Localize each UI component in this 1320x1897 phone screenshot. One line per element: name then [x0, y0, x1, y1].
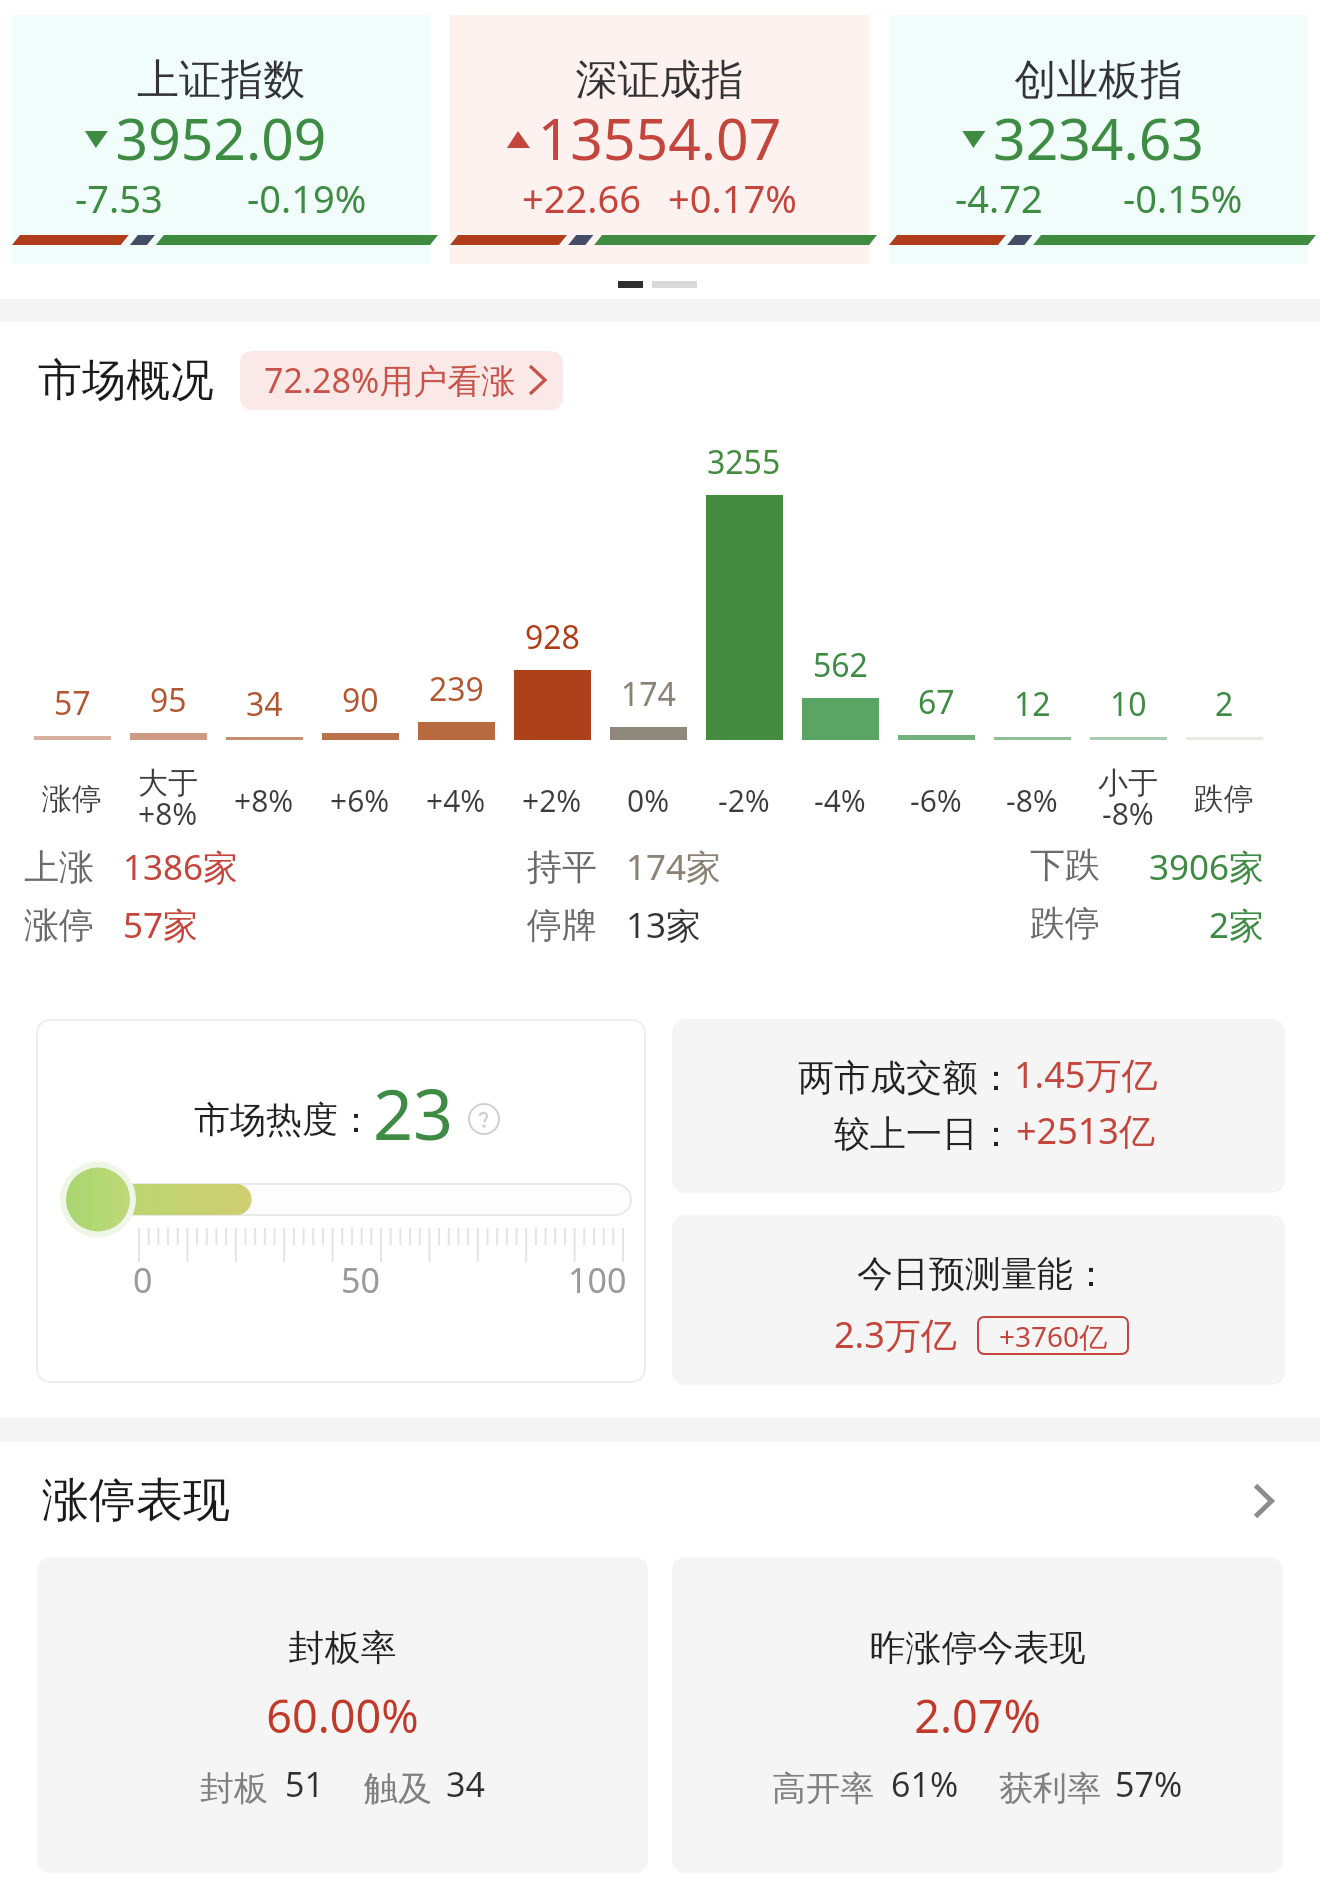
staticText: +8%	[234, 780, 294, 821]
staticText: -8%	[1102, 793, 1154, 834]
button[interactable]: 上证指数	[12, 15, 430, 264]
staticText: 跌停	[1030, 901, 1100, 945]
staticText: 下跌	[1030, 843, 1100, 887]
staticText: 市场概况	[38, 353, 214, 408]
staticText: 61%	[891, 1761, 959, 1807]
staticText: 562	[813, 643, 868, 687]
button[interactable]: 涨停表现	[42, 1471, 1274, 1530]
staticText: 90	[342, 678, 379, 722]
staticText: 95	[150, 678, 187, 722]
staticText: +2513亿	[1016, 1106, 1155, 1155]
staticText: 封板率	[37, 1625, 648, 1670]
staticText: 0	[133, 1257, 153, 1303]
staticText: 今日预测量能：	[857, 1251, 1109, 1296]
staticText: 51	[285, 1761, 324, 1807]
button[interactable]: 昨涨停今表现	[672, 1557, 1283, 1873]
staticText: -7.53	[75, 172, 163, 224]
staticText: 10	[1110, 682, 1147, 726]
staticText: -4%	[814, 780, 866, 821]
staticText: 13554.07	[450, 99, 869, 177]
staticText: -0.15%	[1123, 172, 1243, 224]
staticText: -0.19%	[247, 172, 367, 224]
button[interactable]: 市场热度：	[36, 1019, 646, 1383]
staticText: 239	[429, 667, 484, 711]
staticText: 触及	[364, 1767, 432, 1810]
staticText: 0%	[627, 780, 670, 821]
staticText: +0.17%	[668, 172, 797, 224]
staticText: 2.07%	[672, 1685, 1283, 1746]
staticText: -8%	[1006, 780, 1058, 821]
staticText: 高开率	[772, 1767, 874, 1810]
staticText: 3906家	[0, 843, 1264, 891]
staticText: 34	[446, 1761, 485, 1807]
staticText: 12	[1014, 682, 1051, 726]
staticText: 两市成交额：	[798, 1055, 1014, 1100]
staticText: 涨停	[24, 903, 94, 947]
staticText: 100	[568, 1257, 627, 1303]
staticText: +8%	[138, 793, 198, 834]
staticText: 23	[373, 1065, 454, 1160]
staticText: 封板	[200, 1767, 268, 1810]
staticText: 57%	[1115, 1761, 1183, 1807]
staticText: 昨涨停今表现	[672, 1625, 1283, 1670]
button[interactable]: 72.28%用户看涨	[240, 351, 563, 410]
staticText: 上涨	[24, 845, 94, 889]
staticText: 57家	[123, 901, 199, 949]
staticText: 34	[246, 682, 283, 726]
staticText: +4%	[426, 780, 486, 821]
staticText: 174家	[626, 843, 722, 891]
button[interactable]: 封板率	[37, 1557, 648, 1873]
staticText: 50	[341, 1257, 380, 1303]
staticText: 较上一日：	[834, 1111, 1014, 1156]
staticText: 13家	[626, 901, 702, 949]
staticText: 涨停表现	[42, 1471, 230, 1530]
staticText: 涨停	[42, 780, 102, 818]
staticText: +6%	[330, 780, 390, 821]
staticText: 深证成指	[450, 54, 869, 107]
staticText: +3760亿	[999, 1317, 1108, 1355]
staticText: -6%	[910, 780, 962, 821]
staticText: 停牌	[527, 903, 597, 947]
staticText: 3234.63	[889, 99, 1308, 177]
staticText: 2.3万亿	[834, 1310, 957, 1359]
staticText: -4.72	[955, 172, 1043, 224]
button[interactable]: 深证成指	[450, 15, 869, 264]
staticText: +2%	[522, 780, 582, 821]
staticText: 72.28%用户看涨	[264, 357, 516, 403]
staticText: 上证指数	[12, 54, 430, 107]
button[interactable]: 创业板指	[889, 15, 1308, 264]
button[interactable]: 市场热度说明	[468, 1103, 500, 1135]
staticText: 获利率	[999, 1767, 1101, 1810]
staticText: 持平	[527, 845, 597, 889]
staticText: 60.00%	[37, 1685, 648, 1746]
staticText: 174	[621, 672, 676, 716]
staticText: 小于	[1098, 764, 1158, 802]
staticText: 57	[54, 681, 91, 725]
other: 查看更多	[1253, 1483, 1274, 1519]
button[interactable]: 今日预测量能：	[672, 1215, 1285, 1385]
staticText: 市场热度：	[194, 1097, 374, 1142]
staticText: 3952.09	[12, 99, 430, 177]
button[interactable]: 两市成交额：	[672, 1019, 1285, 1193]
staticText: 大于	[138, 764, 198, 802]
staticText: 3255	[707, 440, 781, 484]
staticText: 1386家	[123, 843, 239, 891]
staticText: 跌停	[1194, 780, 1254, 818]
staticText: 2家	[0, 901, 1264, 949]
staticText: 67	[918, 680, 955, 724]
staticText: 1.45万亿	[1014, 1050, 1158, 1099]
staticText: 创业板指	[889, 54, 1308, 107]
staticText: 928	[525, 615, 580, 659]
staticText: -2%	[718, 780, 770, 821]
staticText: +22.66	[522, 172, 641, 224]
staticText: 2	[1215, 682, 1234, 726]
